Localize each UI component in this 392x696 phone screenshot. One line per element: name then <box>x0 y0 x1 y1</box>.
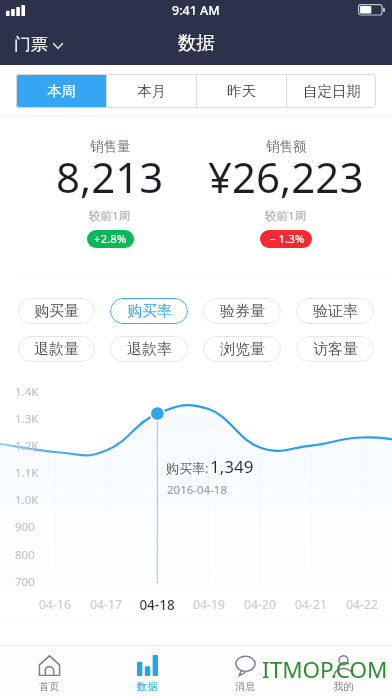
staticText: 销售量 <box>90 138 131 155</box>
staticText: 04-21 <box>285 596 337 613</box>
button[interactable]: 验券量 <box>203 298 281 324</box>
staticText: +2.8% <box>94 231 127 247</box>
staticText: 1.4K <box>15 384 39 400</box>
staticText: 9:41 AM <box>172 2 220 19</box>
button[interactable]: 数据 <box>98 645 196 696</box>
button[interactable]: 消息 <box>196 645 294 696</box>
staticText: 04-18 <box>131 596 183 614</box>
staticText: 1.1K <box>15 465 39 481</box>
button[interactable]: 本周 <box>16 74 106 108</box>
staticText: 1.0K <box>15 492 39 508</box>
staticText: ITMOP.COM <box>262 654 388 685</box>
staticText: 1.3K <box>15 411 39 427</box>
staticText: 销售额 <box>266 138 307 155</box>
staticText: 较前1周 <box>265 208 307 224</box>
staticText: 1.2K <box>15 438 39 454</box>
staticText: 门票 <box>14 34 48 55</box>
button[interactable]: 购买量 <box>18 298 95 324</box>
staticText: 我的 <box>333 680 354 693</box>
button[interactable]: 退款量 <box>18 336 95 362</box>
staticText: 1,349 <box>210 455 254 478</box>
staticText: 数据 <box>137 680 158 693</box>
staticText: 本月 <box>137 82 166 100</box>
button[interactable]: 退款率 <box>110 336 188 362</box>
staticText: 消息 <box>235 680 256 693</box>
staticText: 本周 <box>47 82 76 100</box>
button[interactable]: 昨天 <box>197 74 286 108</box>
staticText: 04-17 <box>80 596 132 613</box>
staticText: 购买率 <box>127 302 172 321</box>
staticText: 昨天 <box>227 82 256 100</box>
staticText: 访客量 <box>313 340 358 359</box>
staticText: －1.3% <box>267 231 305 247</box>
staticText: 退款量 <box>34 340 79 359</box>
staticText: 800 <box>15 547 35 563</box>
staticText: 04-16 <box>29 596 81 613</box>
staticText: 验证率 <box>313 302 358 321</box>
staticText: 04-22 <box>336 596 388 613</box>
button[interactable]: 门票 <box>0 30 73 59</box>
staticText: 04-20 <box>234 596 286 613</box>
staticText: 浏览量 <box>220 340 265 359</box>
button[interactable]: 购买率 <box>110 298 188 324</box>
staticText: 较前1周 <box>89 208 131 224</box>
button[interactable]: 验证率 <box>296 298 374 324</box>
staticText: 购买率: <box>166 459 209 477</box>
staticText: 自定日期 <box>303 82 361 100</box>
staticText: 退款率 <box>127 340 172 359</box>
staticText: 数据 <box>178 31 215 54</box>
button[interactable]: 浏览量 <box>203 336 281 362</box>
staticText: 2016-04-18 <box>167 482 228 498</box>
staticText: 购买量 <box>34 302 79 321</box>
button[interactable]: 自定日期 <box>287 74 376 108</box>
staticText: 900 <box>15 519 35 535</box>
button[interactable]: 我的 <box>294 645 392 696</box>
staticText: 8,213 <box>56 148 164 205</box>
button[interactable]: 访客量 <box>296 336 374 362</box>
staticText: 700 <box>15 574 35 590</box>
staticText: 04-19 <box>183 596 235 613</box>
button[interactable]: 本月 <box>107 74 196 108</box>
staticText: 首页 <box>39 680 60 693</box>
button[interactable]: 首页 <box>0 645 98 696</box>
staticText: ¥26,223 <box>208 148 364 205</box>
staticText: 验券量 <box>220 302 265 321</box>
